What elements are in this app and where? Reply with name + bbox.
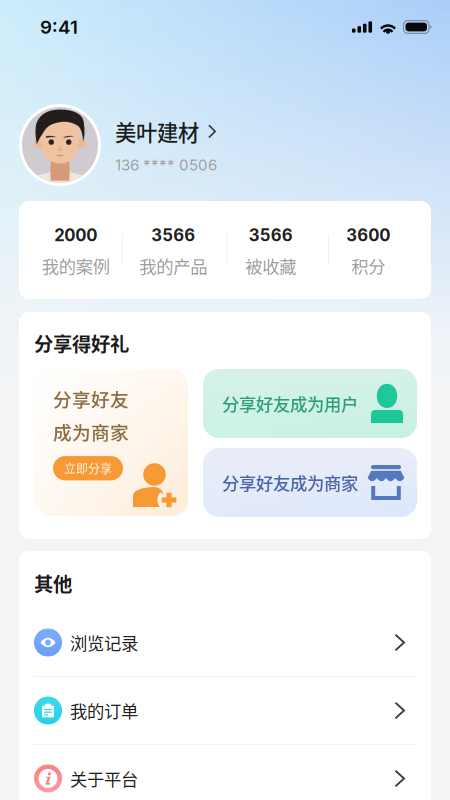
button[interactable]: 关于平台 xyxy=(19,745,431,800)
staticText: 2000 xyxy=(54,225,97,245)
button[interactable]: 浏览记录 xyxy=(19,609,431,676)
staticText: 积分 xyxy=(351,253,385,278)
staticText: 3600 xyxy=(346,225,390,245)
button[interactable]: 3566 xyxy=(222,201,319,299)
staticText: 分享好友成为用户 xyxy=(222,391,358,416)
staticText: 立即分享 xyxy=(64,460,112,477)
staticText: 分享好友成为商家 xyxy=(222,470,358,495)
staticText: 浏览记录 xyxy=(70,630,138,655)
staticText: 9:41 xyxy=(40,16,78,38)
staticText: 136 **** 0506 xyxy=(115,156,217,174)
button[interactable]: 美叶建材 xyxy=(0,104,450,186)
button[interactable]: 3566 xyxy=(124,201,222,299)
staticText: 关于平台 xyxy=(70,766,138,791)
button[interactable]: 分享好友成为商家 xyxy=(203,448,417,517)
button[interactable]: 分享好友成为用户 xyxy=(203,369,417,438)
staticText: 分享得好礼 xyxy=(34,329,129,357)
staticText: 3566 xyxy=(249,225,293,245)
button[interactable]: 分享好友 xyxy=(34,370,188,516)
staticText: 我的案例 xyxy=(42,253,110,278)
staticText: 分享好友 xyxy=(53,385,129,412)
staticText: 成为商家 xyxy=(53,418,129,445)
button[interactable]: 2000 xyxy=(27,201,124,299)
staticText: 被收藏 xyxy=(245,253,296,278)
staticText: 美叶建材 xyxy=(115,116,199,147)
staticText: 我的订单 xyxy=(70,698,138,723)
button[interactable]: 3600 xyxy=(319,201,417,299)
button[interactable]: 我的订单 xyxy=(19,677,431,744)
staticText: 我的产品 xyxy=(139,253,207,278)
staticText: 3566 xyxy=(151,225,195,245)
staticText: 其他 xyxy=(34,569,72,597)
